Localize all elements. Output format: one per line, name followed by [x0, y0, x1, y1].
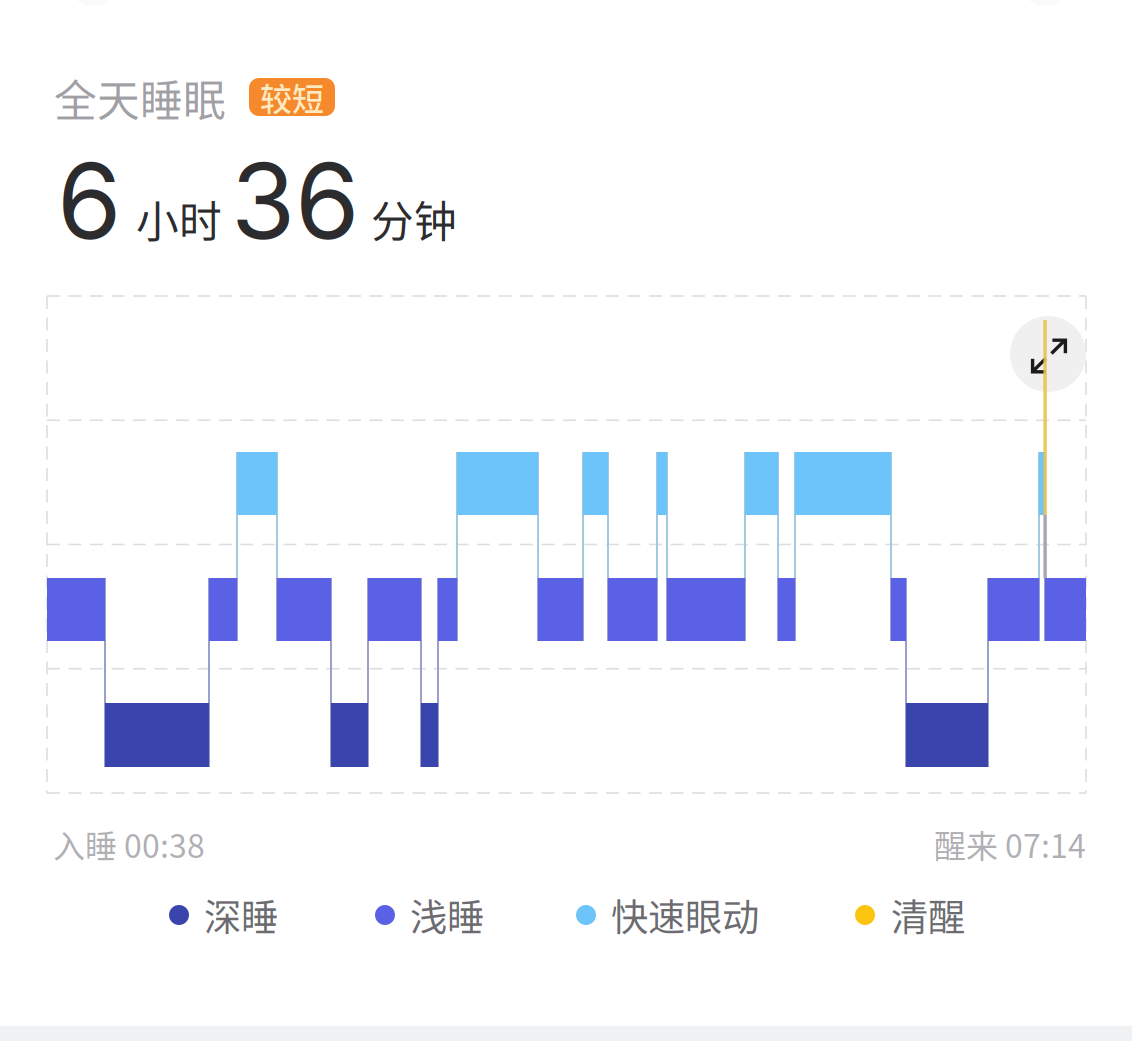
staticText: 36 [231, 138, 359, 264]
staticText: 入睡 00:38 [53, 821, 205, 867]
staticText: 浅睡 [410, 888, 484, 942]
staticText: 全天睡眠 [54, 67, 226, 129]
staticText: 分钟 [371, 188, 457, 250]
staticText: 深睡 [204, 888, 278, 942]
staticText: 小时 [136, 188, 222, 250]
button[interactable]: 全屏查看 [1010, 316, 1086, 392]
staticText: 较短 [260, 74, 324, 120]
staticText: 醒来 07:14 [934, 821, 1086, 867]
staticText: 6 [57, 138, 121, 264]
staticText: 快速眼动 [611, 888, 759, 942]
button[interactable]: 较短 [249, 78, 335, 116]
staticText: 清醒 [891, 888, 965, 942]
